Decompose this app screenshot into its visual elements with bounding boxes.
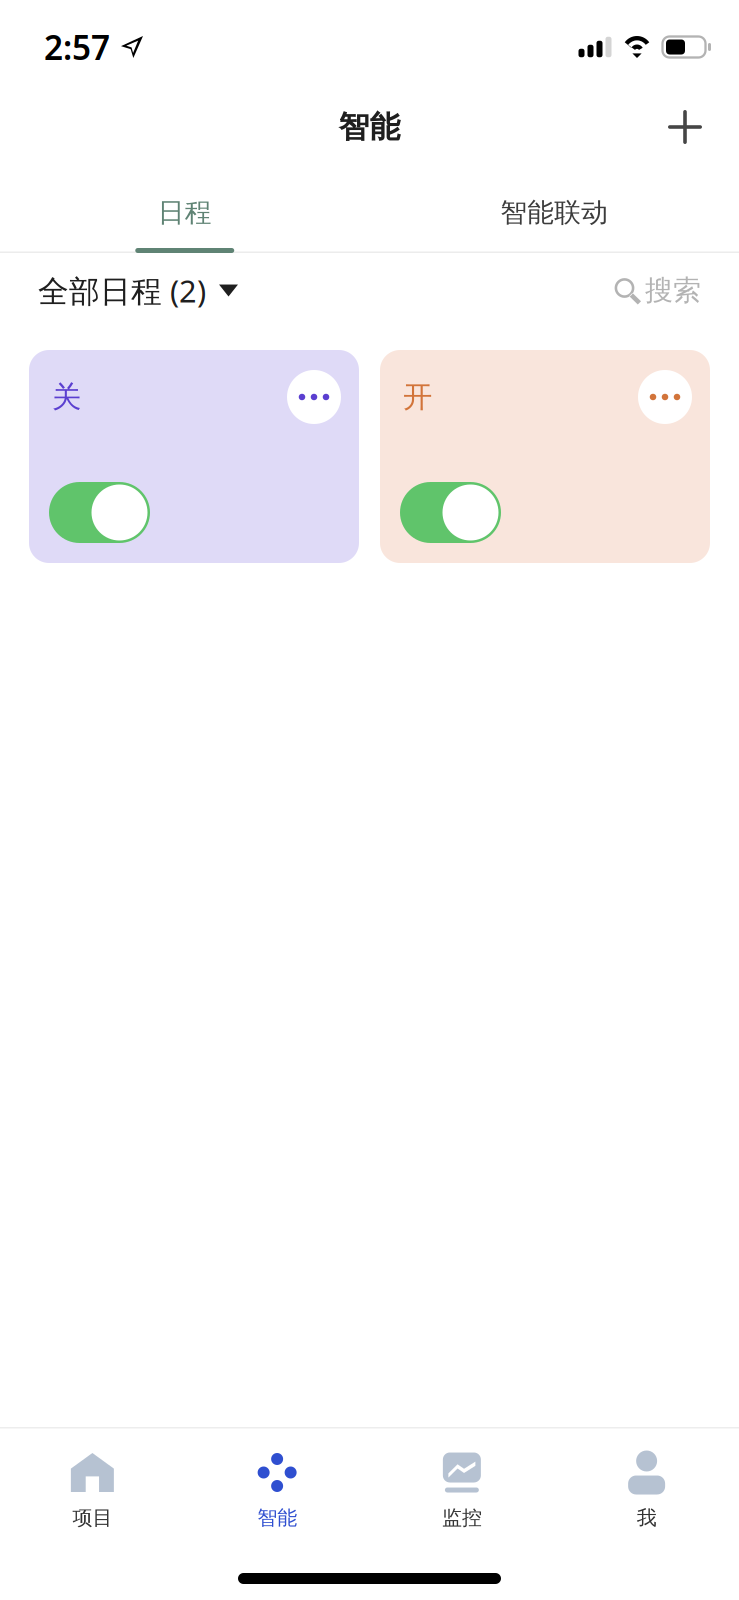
button[interactable]: 开 [380,350,710,563]
staticText: 搜索 [645,273,701,308]
button[interactable]: Add [653,95,717,159]
button[interactable]: 智能联动 [369,177,739,253]
staticText: 智能 [257,1505,297,1530]
staticText: 日程 [158,196,212,229]
staticText: 项目 [72,1505,112,1530]
button[interactable]: 智能 [185,1450,370,1530]
staticText: 开 [403,379,432,415]
staticText: 智能联动 [500,196,608,229]
button[interactable]: 搜索 [612,273,701,308]
staticText: 全部日程 (2) [38,270,206,311]
button[interactable]: 全部日程 (2) [38,270,238,311]
staticText: 关 [52,379,81,415]
button[interactable]: More options [638,370,692,424]
button[interactable]: 日程 [0,177,369,253]
button[interactable]: 我 [554,1450,739,1530]
staticText: 智能 [338,108,400,146]
staticText: 我 [637,1505,657,1530]
button[interactable]: 关 [29,350,359,563]
staticText: 监控 [442,1505,482,1530]
button[interactable]: 项目 [0,1450,185,1530]
button[interactable]: 监控 [369,1450,554,1530]
button[interactable]: More options [287,370,341,424]
staticText: 2:57 [44,25,110,69]
